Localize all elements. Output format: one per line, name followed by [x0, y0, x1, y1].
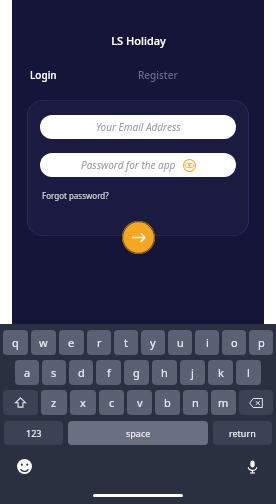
staticText: Your Email Address [96, 120, 181, 134]
button[interactable]: r [87, 330, 111, 355]
staticText: q [12, 335, 19, 350]
button[interactable]: return [213, 421, 272, 445]
staticText: x [80, 395, 86, 410]
staticText: f [107, 365, 111, 380]
staticText: v [137, 395, 143, 410]
button[interactable]: Forgot password? [40, 188, 111, 203]
staticText: n [192, 395, 199, 410]
staticText: 123 [26, 427, 42, 439]
staticText: a [24, 365, 31, 380]
button[interactable]: Password for the app [40, 153, 236, 177]
button[interactable]: v [127, 390, 152, 415]
staticText: Login [30, 68, 57, 82]
staticText: b [164, 395, 171, 410]
button[interactable]: space [68, 421, 208, 445]
button[interactable]: u [168, 330, 192, 355]
staticText: g [133, 365, 140, 380]
staticText: return [229, 427, 256, 439]
button[interactable]: n [183, 390, 208, 415]
button[interactable]: Voice input [242, 456, 262, 476]
staticText: w [39, 335, 48, 350]
staticText: s [51, 365, 57, 380]
button[interactable]: k [208, 360, 233, 385]
button[interactable]: w [31, 330, 56, 355]
staticText: k [218, 365, 224, 380]
staticText: LS Holiday [111, 33, 166, 48]
staticText: p [258, 335, 265, 350]
staticText: j [191, 365, 194, 380]
staticText: y [150, 335, 156, 350]
staticText: Password for the app [81, 158, 176, 172]
staticText: d [78, 365, 85, 380]
staticText: l [247, 365, 250, 380]
button[interactable]: 123 [4, 421, 63, 445]
button[interactable]: q [3, 330, 28, 355]
button[interactable]: m [211, 390, 236, 415]
staticText: c [109, 395, 115, 410]
button[interactable]: Show password [182, 158, 196, 172]
button[interactable]: a [15, 360, 39, 385]
button[interactable]: Backspace [239, 390, 273, 415]
staticText: space [126, 427, 151, 439]
button[interactable]: o [222, 330, 246, 355]
button[interactable]: Your Email Address [40, 115, 236, 139]
button[interactable]: b [155, 390, 180, 415]
button[interactable]: l [236, 360, 261, 385]
button[interactable]: t [114, 330, 138, 355]
staticText: Register [138, 68, 178, 82]
button[interactable]: s [42, 360, 66, 385]
button[interactable]: e [59, 330, 84, 355]
button[interactable]: x [70, 390, 96, 415]
button[interactable]: Shift [3, 390, 38, 415]
button[interactable]: h [152, 360, 177, 385]
staticText: e [68, 335, 75, 350]
button[interactable]: Login [30, 65, 138, 85]
button[interactable]: Emoji [14, 456, 34, 476]
staticText: t [124, 335, 128, 350]
button[interactable]: g [124, 360, 149, 385]
staticText: m [218, 395, 229, 410]
staticText: r [97, 335, 102, 350]
button[interactable]: Submit [122, 221, 155, 254]
button[interactable]: p [249, 330, 273, 355]
staticText: z [51, 395, 57, 410]
staticText: h [161, 365, 168, 380]
button[interactable]: j [180, 360, 205, 385]
button[interactable]: c [99, 390, 124, 415]
staticText: u [177, 335, 184, 350]
button[interactable]: f [96, 360, 121, 385]
staticText: Forgot password? [42, 190, 109, 201]
button[interactable]: i [195, 330, 219, 355]
button[interactable]: Register [138, 65, 246, 85]
button[interactable]: y [141, 330, 165, 355]
button[interactable]: d [69, 360, 93, 385]
staticText: o [231, 335, 238, 350]
staticText: i [206, 335, 209, 350]
button[interactable]: z [41, 390, 67, 415]
